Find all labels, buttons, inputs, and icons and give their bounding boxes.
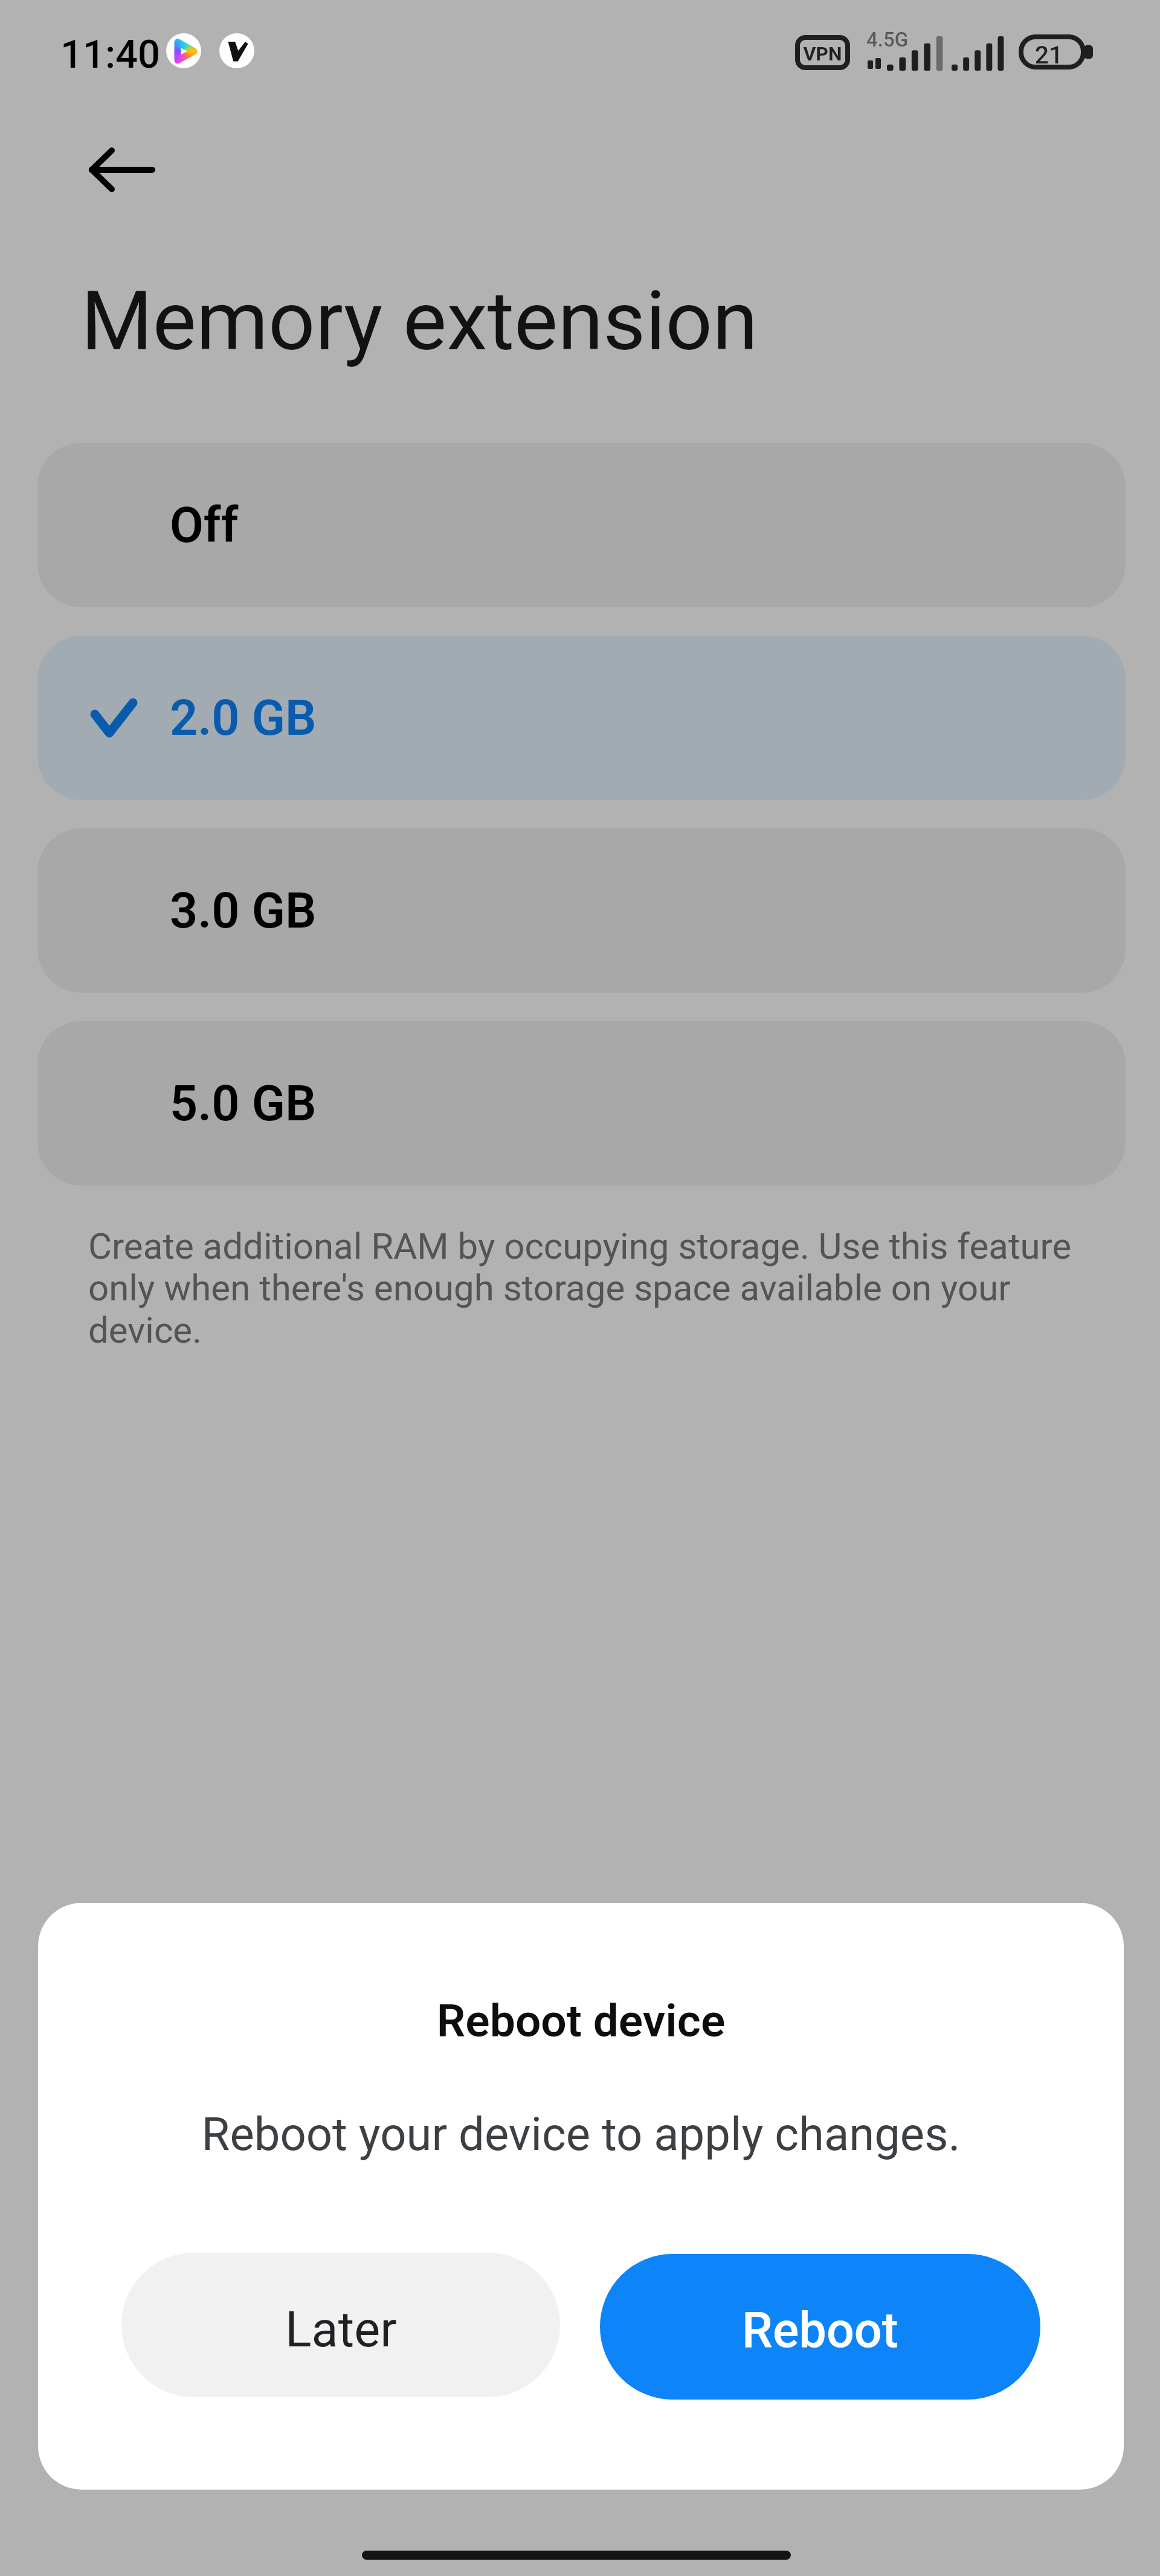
staticText: Reboot device xyxy=(38,1994,1124,2047)
staticText: Reboot xyxy=(742,2302,898,2359)
button[interactable]: 3.0 GB xyxy=(37,828,1126,993)
staticText: 11:40 xyxy=(60,31,160,77)
button[interactable]: Back xyxy=(58,128,161,212)
button[interactable]: 2.0 GB xyxy=(37,636,1126,800)
staticText: 5.0 GB xyxy=(170,1075,317,1132)
button[interactable]: 5.0 GB xyxy=(37,1021,1126,1186)
staticText: Memory extension xyxy=(81,273,758,369)
staticText: Reboot your device to apply changes. xyxy=(38,2107,1124,2161)
staticText: 4.5G xyxy=(866,28,909,51)
staticText: 2.0 GB xyxy=(170,689,317,747)
staticText: 21 xyxy=(1019,40,1079,69)
button[interactable]: Later xyxy=(121,2253,560,2397)
staticText: VPN xyxy=(795,42,850,65)
button[interactable]: Reboot xyxy=(600,2254,1040,2400)
staticText: 3.0 GB xyxy=(170,882,317,940)
staticText: Create additional RAM by occupying stora… xyxy=(88,1225,1085,1352)
staticText: Later xyxy=(285,2301,397,2358)
staticText: Off xyxy=(170,497,239,554)
button[interactable]: Off xyxy=(37,443,1126,607)
